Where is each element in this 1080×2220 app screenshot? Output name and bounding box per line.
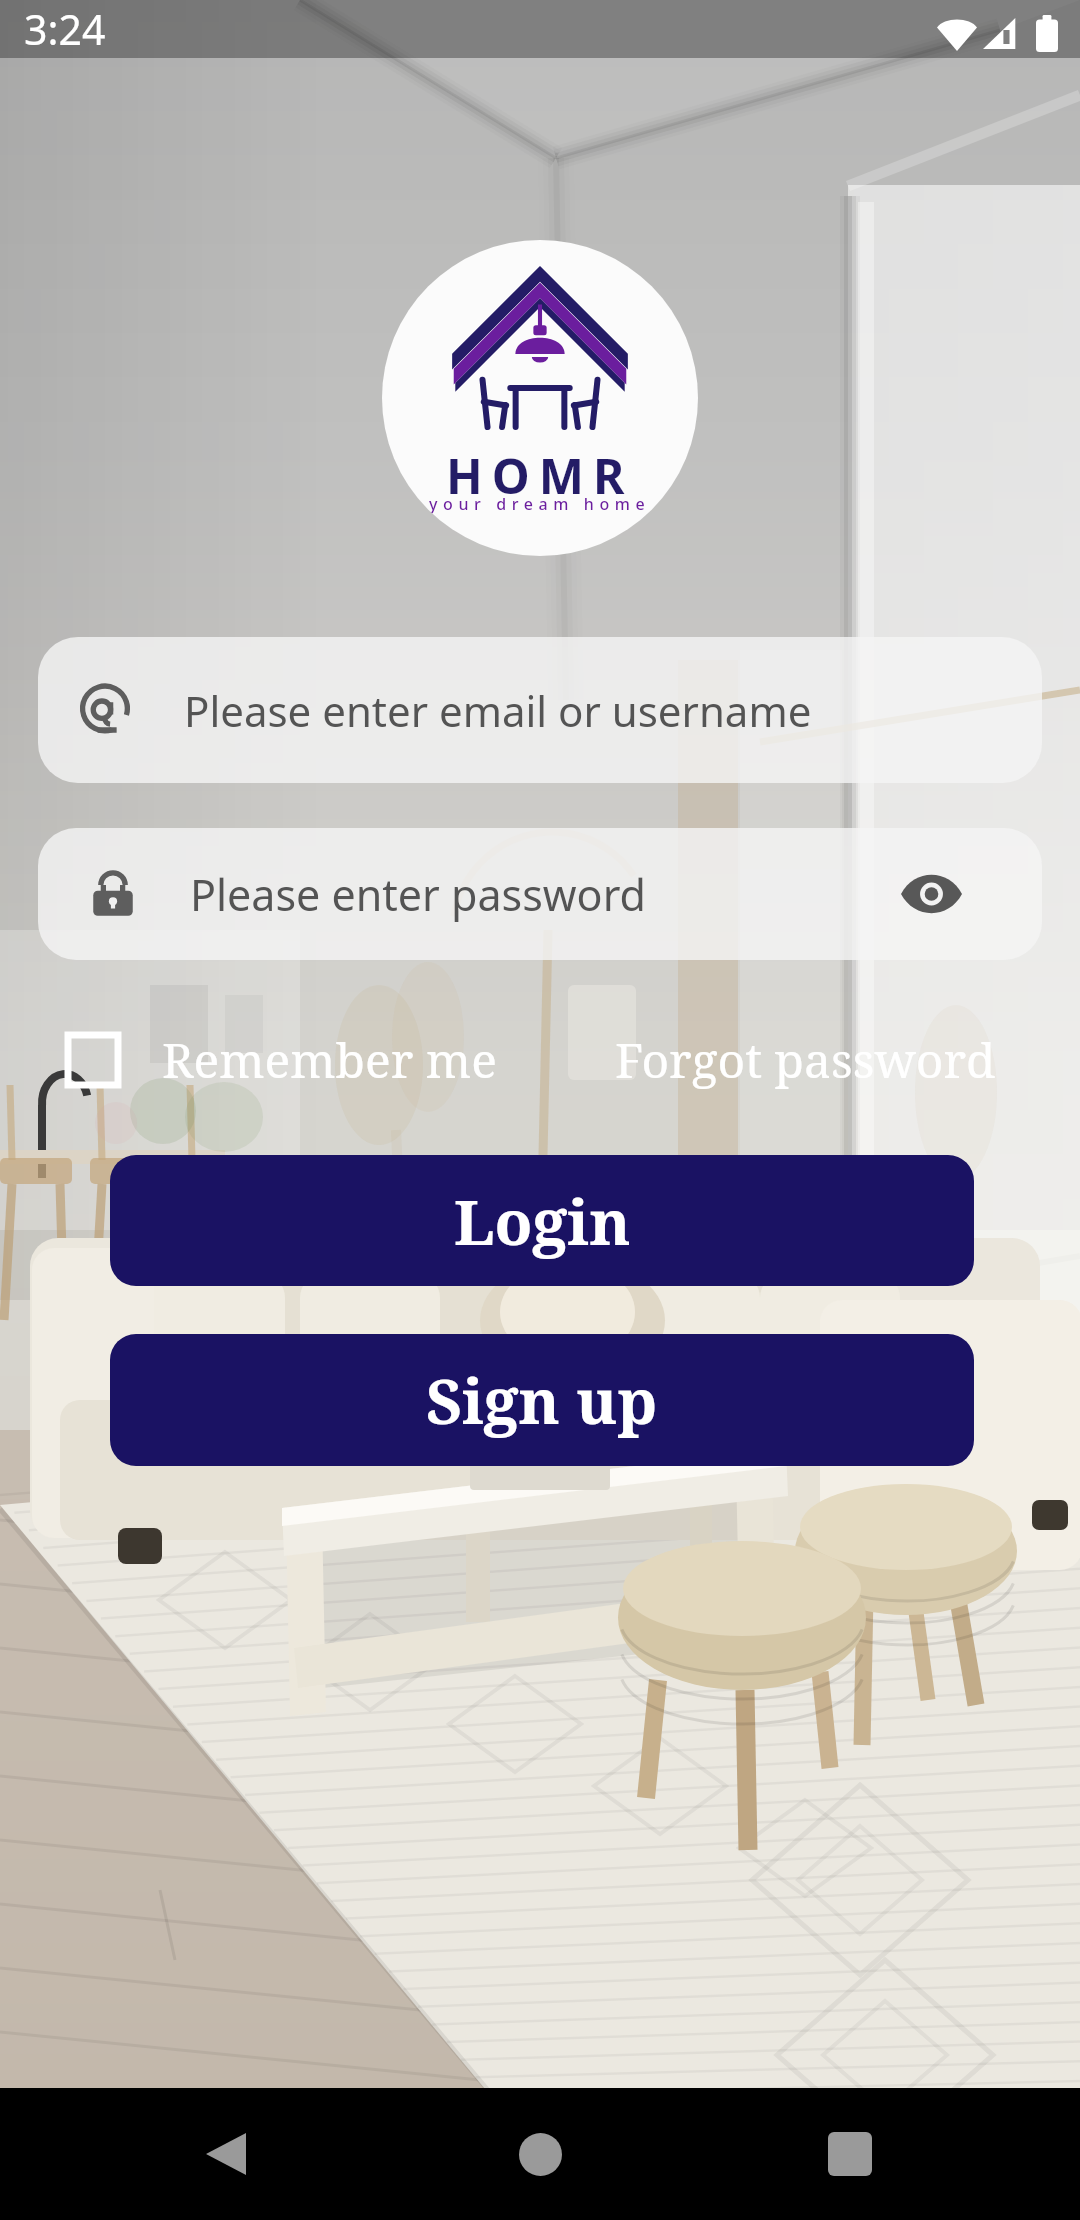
button[interactable]: Remember me xyxy=(68,1027,497,1092)
staticText: Remember me xyxy=(162,1027,497,1092)
button[interactable]: Login xyxy=(110,1155,974,1286)
staticText: Please enter password xyxy=(190,865,646,924)
button[interactable]: Sign up xyxy=(110,1334,974,1466)
button[interactable]: Back xyxy=(171,2099,281,2209)
button[interactable]: Recents xyxy=(795,2099,905,2209)
staticText: Please enter email or username xyxy=(184,682,812,739)
staticText: Forgot password xyxy=(615,1027,996,1092)
staticText: your dream home xyxy=(429,493,651,515)
button[interactable]: Show password xyxy=(881,844,981,944)
staticText: Login xyxy=(454,1179,631,1263)
button[interactable]: Forgot password xyxy=(615,1027,996,1092)
staticText: Sign up xyxy=(426,1358,658,1442)
staticText: HOMR xyxy=(446,443,634,508)
button[interactable]: Please enter password xyxy=(38,828,1042,960)
button[interactable]: Home xyxy=(485,2099,595,2209)
button[interactable]: Please enter email or username xyxy=(38,637,1042,783)
staticText: 3:24 xyxy=(24,1,106,57)
